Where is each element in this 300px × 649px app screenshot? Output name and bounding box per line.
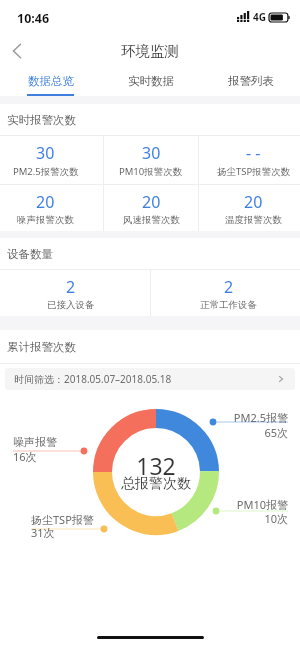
staticText: 20	[244, 191, 263, 213]
staticText: 10次	[264, 511, 288, 526]
staticText: 30	[36, 142, 55, 164]
staticText: 累计报警次数	[7, 340, 76, 354]
staticText: 扬尘TSP报警	[31, 512, 94, 527]
staticText: 环境监测	[121, 42, 179, 60]
button[interactable]: 数据总览	[0, 71, 100, 96]
staticText: 20	[36, 191, 55, 213]
staticText: 实时报警次数	[7, 113, 76, 127]
staticText: PM2.5报警	[233, 410, 288, 425]
staticText: 2	[224, 276, 234, 298]
staticText: 65次	[264, 425, 288, 440]
staticText: 31次	[31, 525, 55, 540]
staticText: 设备数量	[7, 247, 53, 261]
staticText: 30	[142, 142, 161, 164]
button[interactable]: 30	[104, 136, 198, 184]
button[interactable]: 2	[151, 270, 300, 316]
button[interactable]: 报警列表	[200, 71, 300, 96]
button[interactable]: Back	[0, 31, 38, 69]
staticText: 实时数据	[128, 74, 174, 88]
staticText: 噪声报警	[13, 435, 57, 449]
staticText: 16次	[13, 449, 37, 464]
staticText: 已接入设备	[47, 299, 95, 311]
staticText: 风速报警次数	[123, 214, 180, 226]
staticText: PM10报警	[236, 497, 288, 512]
staticText: 132	[136, 450, 176, 481]
button[interactable]: 实时数据	[100, 71, 200, 96]
staticText: 4G	[253, 10, 266, 24]
staticText: 数据总览	[28, 74, 74, 88]
button[interactable]: 2	[0, 270, 150, 316]
staticText: 2	[66, 276, 76, 298]
staticText: PM10报警次数	[119, 165, 183, 178]
staticText: 时间筛选：2018.05.07–2018.05.18	[14, 372, 172, 386]
staticText: 扬尘TSP报警次数	[217, 165, 291, 178]
staticText: 10:46	[17, 10, 50, 27]
staticText: 温度报警次数	[225, 214, 282, 226]
button[interactable]: - -	[199, 136, 300, 184]
button[interactable]: 时间筛选：2018.05.07–2018.05.18	[5, 368, 295, 390]
button[interactable]: 30	[0, 136, 103, 184]
button[interactable]: 20	[0, 185, 103, 231]
staticText: 正常工作设备	[200, 299, 257, 311]
staticText: 噪声报警次数	[17, 214, 74, 226]
staticText: 报警列表	[228, 74, 274, 88]
staticText: - -	[246, 142, 261, 164]
staticText: 20	[142, 191, 161, 213]
staticText: 总报警次数	[121, 475, 191, 493]
button[interactable]: 20	[199, 185, 300, 231]
button[interactable]: 20	[104, 185, 198, 231]
staticText: PM2.5报警次数	[13, 165, 79, 178]
